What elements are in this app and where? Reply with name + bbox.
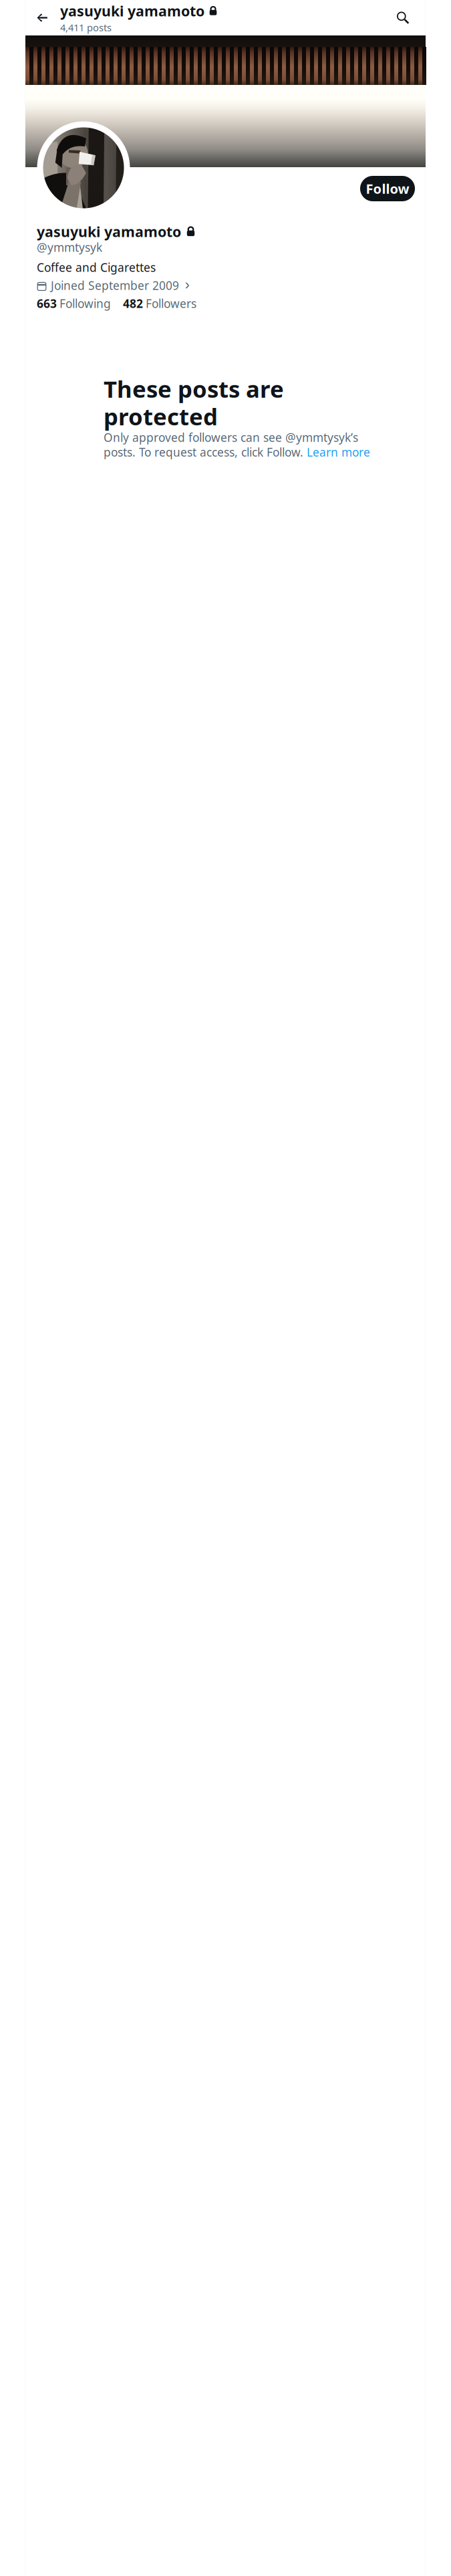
staticText: Learn more — [307, 444, 370, 460]
button[interactable]: Follow — [360, 176, 415, 201]
button[interactable]: 482 — [123, 296, 196, 311]
staticText: protected — [104, 401, 218, 432]
button[interactable]: 663 — [37, 296, 111, 311]
staticText: Only approved followers can see @ymmtysy… — [104, 430, 358, 445]
staticText: @ymmtysyk — [37, 240, 102, 255]
staticText: Following — [59, 296, 111, 311]
button[interactable]: Learn more — [307, 444, 370, 460]
staticText: yasuyuki yamamoto — [37, 222, 181, 241]
staticText: These posts are — [104, 373, 284, 404]
staticText: posts. To request access, click Follow. — [104, 444, 307, 460]
staticText: yasuyuki yamamoto — [60, 1, 204, 20]
button[interactable]: Search — [386, 0, 420, 35]
button[interactable]: Joined September 2009 — [37, 278, 191, 293]
staticText: Coffee and Cigarettes — [37, 260, 156, 275]
staticText: 4,411 posts — [60, 21, 112, 34]
staticText: Joined September 2009 — [51, 278, 179, 293]
button[interactable]: Back — [24, 0, 60, 35]
staticText: Follow — [366, 180, 409, 197]
staticText: 482 — [123, 296, 143, 311]
staticText: Followers — [146, 296, 196, 311]
staticText: 663 — [37, 296, 57, 311]
